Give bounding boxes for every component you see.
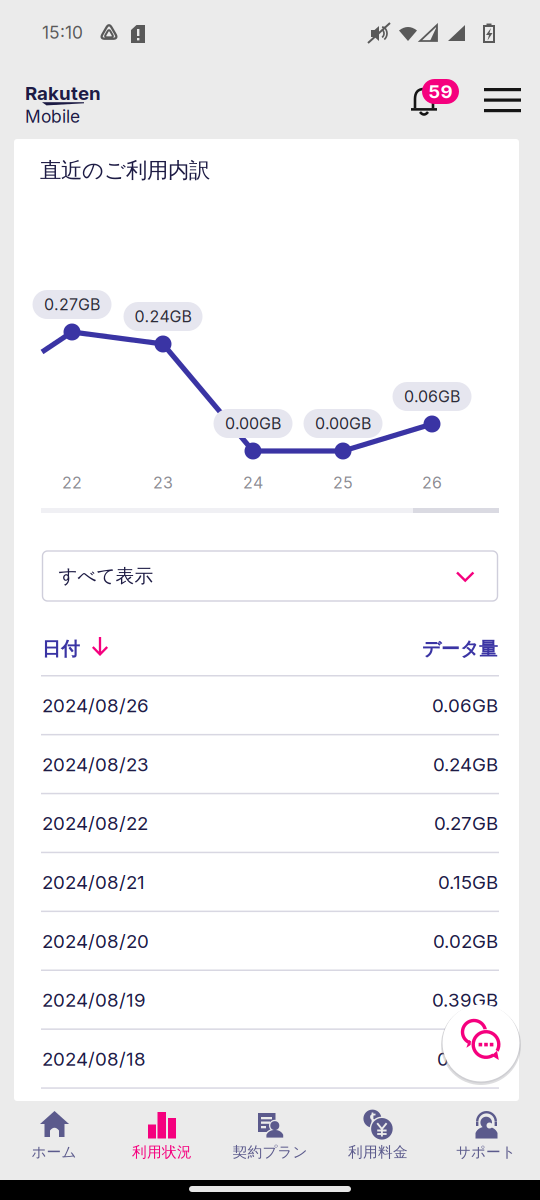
staticText: サポート xyxy=(456,1143,516,1161)
staticText: 0.24GB xyxy=(433,753,498,776)
staticText: 26 xyxy=(422,473,442,492)
button[interactable]: Chat support xyxy=(0,0,79,79)
staticText: ホーム xyxy=(31,1143,76,1161)
staticText: 0.27GB xyxy=(44,295,100,314)
staticText: 2024/08/26 xyxy=(42,694,149,717)
button[interactable]: すべて表示 xyxy=(0,0,455,50)
staticText: 0.06GB xyxy=(404,387,460,406)
staticText: データ量 xyxy=(422,637,498,661)
staticText: 2024/08/21 xyxy=(42,871,145,893)
staticText: 2024/08/20 xyxy=(42,930,149,952)
staticText: 0.06GB xyxy=(432,694,498,717)
staticText: 契約プラン xyxy=(232,1143,307,1161)
button[interactable]: データ量 xyxy=(0,0,120,34)
staticText: 2024/08/23 xyxy=(42,753,149,776)
button[interactable]: 日付 xyxy=(0,0,110,34)
staticText: 直近のご利用内訳 xyxy=(40,157,210,184)
staticText: 59 xyxy=(428,80,452,103)
staticText: 0.39GB xyxy=(432,989,498,1011)
staticText: 2024/08/22 xyxy=(42,812,148,835)
staticText: 23 xyxy=(153,473,173,492)
staticText: 25 xyxy=(333,473,353,492)
button[interactable]: 2024/08/20 xyxy=(0,0,458,57)
button[interactable]: ホーム xyxy=(0,1101,108,1180)
button[interactable]: 2024/08/21 xyxy=(0,0,458,57)
staticText: 0.00GB xyxy=(315,414,371,433)
staticText: 利用料金 xyxy=(348,1143,408,1161)
button[interactable]: 2024/08/23 xyxy=(0,0,458,57)
staticText: 22 xyxy=(62,473,82,492)
staticText: 利用状況 xyxy=(132,1143,192,1161)
button[interactable]: 利用状況 xyxy=(108,1101,216,1180)
button[interactable]: 契約プラン xyxy=(216,1101,324,1180)
button[interactable]: 2024/08/19 xyxy=(0,0,458,57)
staticText: 0.00GB xyxy=(225,414,281,433)
staticText: すべて表示 xyxy=(58,564,153,588)
button[interactable]: 2024/08/22 xyxy=(0,0,458,57)
staticText: 0.02GB xyxy=(433,930,498,952)
button[interactable]: 利用料金 xyxy=(324,1101,432,1180)
staticText: 日付 xyxy=(42,637,80,661)
staticText: 15:10 xyxy=(42,22,83,43)
staticText: 2024/08/19 xyxy=(42,989,146,1011)
staticText: Mobile xyxy=(25,106,80,127)
button[interactable]: 2024/08/26 xyxy=(0,0,458,57)
staticText: 24 xyxy=(243,473,263,492)
button[interactable]: Notifications xyxy=(0,0,58,48)
button[interactable]: Menu xyxy=(0,0,54,48)
button[interactable]: サポート xyxy=(432,1101,540,1180)
staticText: Rakuten xyxy=(25,82,101,105)
staticText: 0.27GB xyxy=(434,812,498,835)
button[interactable]: 2024/08/18 xyxy=(0,0,458,57)
staticText: 0.15GB xyxy=(438,871,498,893)
staticText: 0.13GB xyxy=(437,1048,498,1070)
staticText: 2024/08/18 xyxy=(42,1048,146,1070)
staticText: 0.24GB xyxy=(134,307,191,326)
